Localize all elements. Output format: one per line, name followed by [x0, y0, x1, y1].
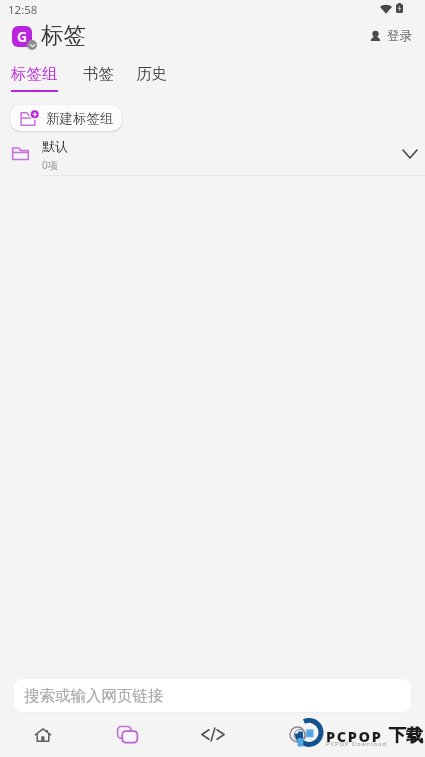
staticText: 标签组	[11, 64, 58, 84]
button[interactable]: 默认	[0, 140, 425, 176]
button[interactable]: Home	[0, 714, 85, 757]
button[interactable]: Tabs	[85, 714, 170, 757]
staticText: PCPOP	[326, 726, 383, 746]
staticText: 12:58	[8, 2, 38, 18]
staticText: 历史	[136, 64, 167, 84]
staticText: 搜索或输入网页链接	[24, 686, 164, 706]
button[interactable]: 搜索或输入网页链接	[13, 678, 412, 713]
button[interactable]: 历史	[136, 63, 167, 96]
staticText: 0项	[42, 158, 58, 172]
staticText: PCPOP Download	[326, 740, 387, 748]
button[interactable]: Developer tools	[170, 714, 255, 757]
button[interactable]: 登录	[366, 25, 415, 47]
button[interactable]: 标签组	[11, 63, 58, 96]
button[interactable]: Switch browser engine	[12, 26, 36, 49]
button[interactable]: 书签	[83, 63, 114, 96]
staticText: 登录	[387, 28, 412, 44]
staticText: G	[17, 27, 28, 46]
button[interactable]: Profile	[255, 714, 340, 757]
button[interactable]: 新建标签组	[10, 105, 122, 131]
staticText: 默认	[42, 138, 68, 154]
staticText: 下载	[389, 725, 423, 746]
staticText: 新建标签组	[46, 110, 114, 127]
staticText: 标签	[41, 21, 86, 49]
button[interactable]: Expand	[398, 142, 422, 166]
staticText: 书签	[83, 64, 114, 84]
